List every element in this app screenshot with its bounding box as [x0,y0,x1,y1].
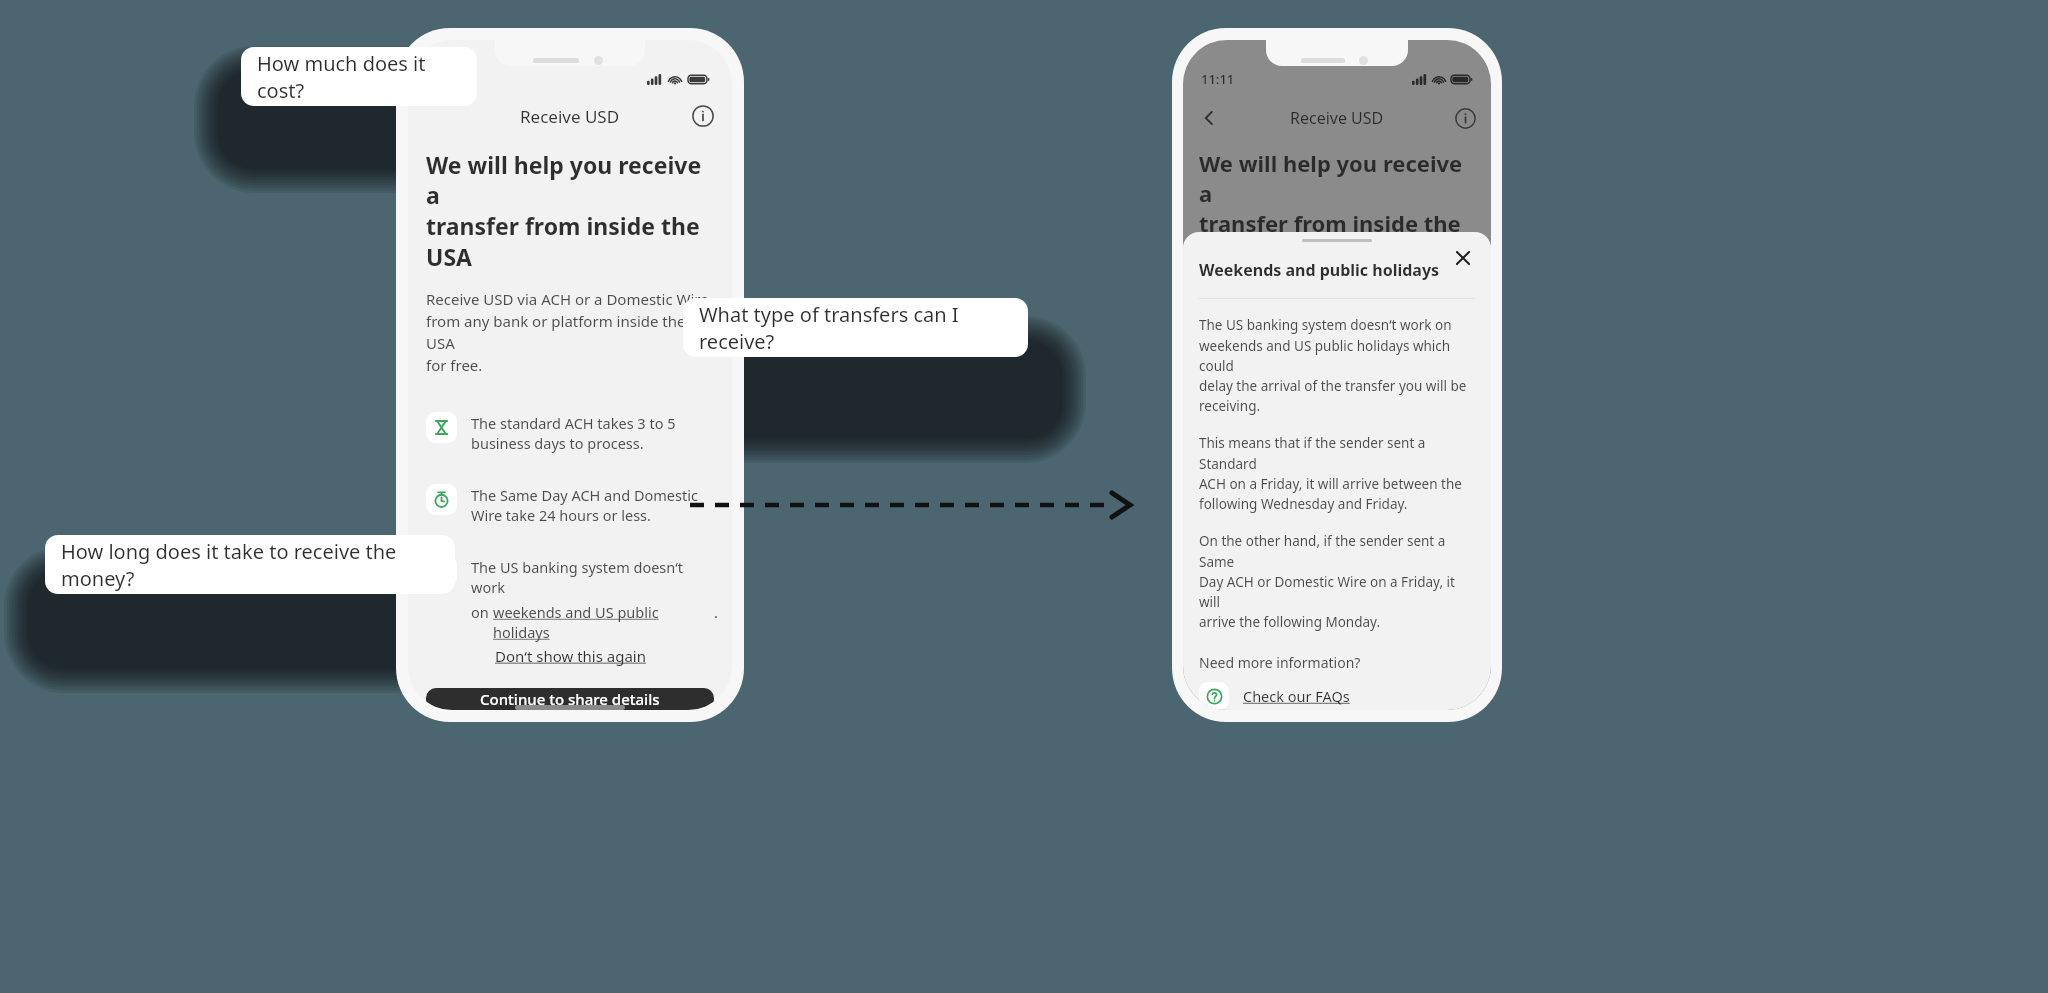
staticText: On the other hand, if the sender sent a … [1199,532,1475,631]
button[interactable]: How much does it cost? [241,47,477,106]
staticText: What type of transfers can I receive? [699,301,1012,355]
staticText: Don‘t show this again [495,646,646,666]
staticText: We will help you receive a transfer from… [1199,148,1475,268]
staticText: weekends and US public holidays [493,602,714,642]
button[interactable]: Information [1453,106,1477,130]
staticText: How long does it take to receive the mon… [61,538,439,592]
staticText: This means that if the sender sent a Sta… [1199,434,1475,513]
button[interactable]: Close [1451,246,1475,270]
staticText: Check our FAQs [1243,686,1350,706]
staticText: Receive USD [1290,107,1384,129]
staticText: Weekends and public holidays [1199,259,1440,281]
staticText: The standard ACH takes 3 to 5 business d… [471,413,676,454]
staticText: We will help you receive a transfer from… [426,149,714,273]
staticText: The US banking system doesn‘t work [471,557,714,597]
staticText: Receive USD via ACH or a Domestic Wire f… [426,289,714,376]
button[interactable]: What type of transfers can I receive? [683,298,1028,357]
button[interactable]: Continue to share details [426,688,714,710]
button[interactable]: Don‘t show this again [408,642,732,670]
staticText: How much does it cost? [257,50,461,104]
button[interactable]: How long does it take to receive the mon… [45,535,455,594]
staticText: The US banking system doesn‘t work on we… [1199,316,1475,415]
staticText: on [471,602,493,622]
staticText: Continue to share details [480,689,660,709]
button[interactable]: Check our FAQs [1199,682,1350,710]
staticText: Receive USD via ACH or a Domestic Wire f… [1199,282,1472,322]
staticText: 11:11 [1201,70,1235,88]
staticText: Receive USD [520,105,620,128]
button[interactable]: Back [1197,106,1221,130]
button[interactable]: weekends and US public holidays [493,602,714,642]
staticText: The Same Day ACH and Domestic Wire take … [471,485,698,526]
button[interactable]: Information [690,103,716,129]
staticText: Need more information? [1199,653,1361,672]
